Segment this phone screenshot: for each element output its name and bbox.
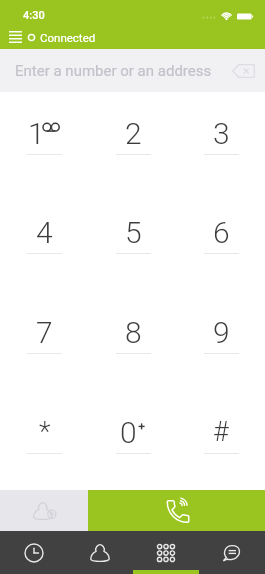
staticText: 3 — [213, 116, 230, 151]
staticText: 5 — [125, 215, 142, 250]
staticText: 8 — [125, 315, 142, 350]
button[interactable]: Add contact — [0, 490, 88, 531]
button[interactable]: 3 — [177, 92, 265, 191]
staticText: 4 — [36, 215, 53, 250]
staticText: 2 — [125, 116, 142, 151]
button[interactable]: Call — [88, 490, 265, 531]
staticText: Enter a number or an address — [15, 62, 212, 80]
button[interactable]: Menu — [3, 25, 27, 49]
staticText: 1 — [28, 116, 45, 151]
button[interactable]: Keypad — [133, 531, 199, 574]
button[interactable]: 2 — [89, 92, 177, 191]
staticText: 0 — [120, 415, 137, 450]
button[interactable]: 4 — [0, 191, 89, 290]
staticText: 4:30 — [23, 9, 45, 22]
button[interactable]: 1 — [0, 92, 89, 191]
button[interactable]: Messages — [199, 531, 265, 574]
button[interactable]: Contacts — [67, 531, 133, 574]
button[interactable]: Recents — [0, 531, 67, 574]
button[interactable]: 5 — [89, 191, 177, 290]
button[interactable]: 0 — [89, 390, 177, 490]
button[interactable]: # — [177, 390, 265, 490]
staticText: Connected — [40, 31, 96, 44]
button[interactable]: 6 — [177, 191, 265, 290]
staticText: 9 — [213, 315, 230, 350]
button[interactable]: 7 — [0, 290, 89, 390]
button[interactable]: * — [0, 390, 89, 490]
button[interactable]: Backspace — [227, 55, 259, 87]
staticText: 6 — [213, 215, 230, 250]
button[interactable]: 9 — [177, 290, 265, 390]
staticText: * — [39, 416, 51, 448]
staticText: # — [213, 416, 229, 448]
button[interactable]: 8 — [89, 290, 177, 390]
staticText: 7 — [36, 315, 53, 350]
